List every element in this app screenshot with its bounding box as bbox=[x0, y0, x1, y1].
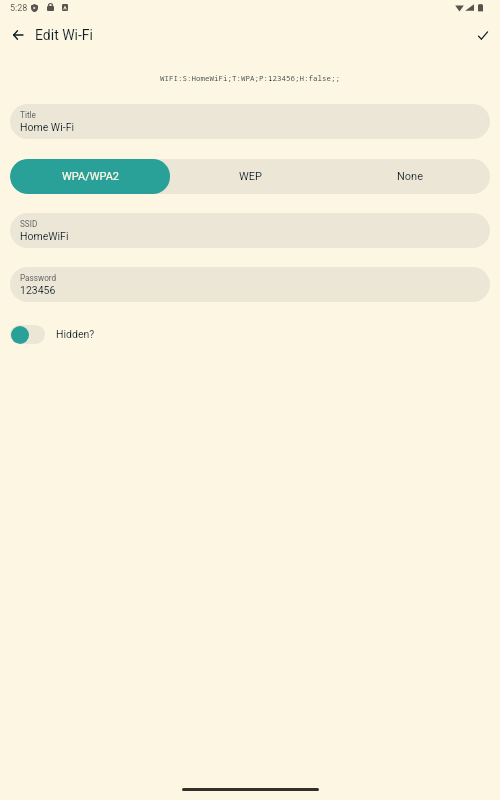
staticText: Edit Wi-Fi bbox=[35, 27, 94, 43]
staticText: None bbox=[397, 170, 424, 183]
staticText: WEP bbox=[239, 170, 262, 183]
button[interactable]: WEP bbox=[170, 159, 330, 194]
staticText: 123456 bbox=[20, 284, 56, 296]
button[interactable]: Save bbox=[471, 23, 495, 47]
staticText: HomeWiFi bbox=[20, 230, 69, 242]
staticText: Hidden? bbox=[56, 328, 95, 340]
button[interactable]: SSID bbox=[10, 213, 490, 248]
staticText: SSID bbox=[20, 219, 38, 229]
staticText: WPA/WPA2 bbox=[62, 170, 119, 183]
button[interactable]: Password bbox=[10, 267, 490, 302]
button[interactable]: Back bbox=[6, 23, 30, 47]
staticText: WIFI:S:HomeWiFi;T:WPA;P:123456;H:false;; bbox=[0, 73, 500, 83]
button[interactable]: None bbox=[330, 159, 490, 194]
staticText: Title bbox=[20, 110, 36, 120]
button[interactable]: Hidden, off bbox=[10, 325, 45, 344]
staticText: 5:28 bbox=[10, 3, 28, 14]
staticText: Password bbox=[20, 273, 57, 283]
button[interactable]: Title bbox=[10, 104, 490, 139]
staticText: Home Wi-Fi bbox=[20, 121, 74, 133]
button[interactable]: WPA/WPA2 bbox=[10, 159, 170, 194]
